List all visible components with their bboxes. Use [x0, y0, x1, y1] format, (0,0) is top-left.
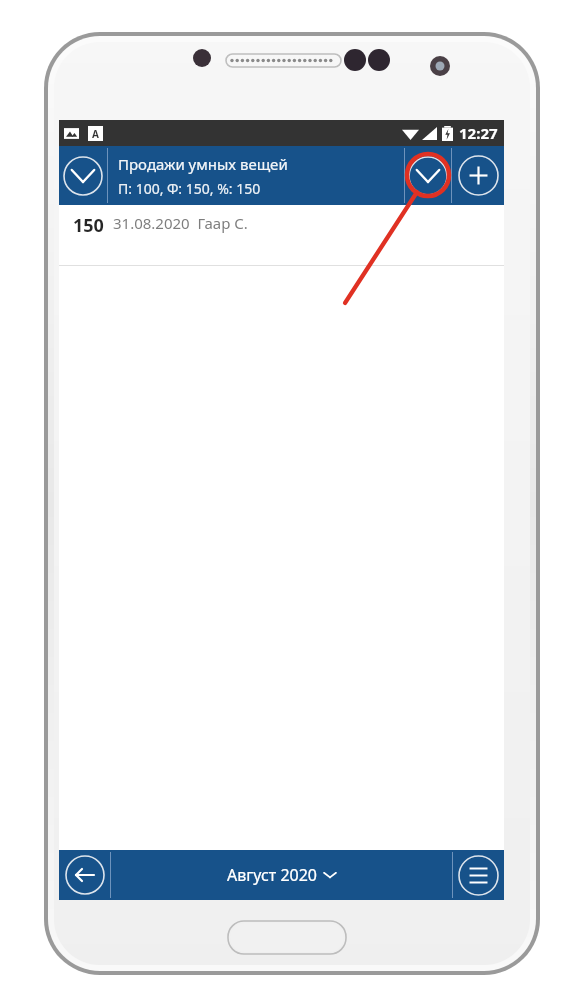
button[interactable]: Menu [453, 850, 504, 900]
staticText: A [92, 127, 99, 141]
staticText: Август 2020 [227, 864, 318, 886]
button[interactable]: Back [59, 850, 110, 900]
button[interactable]: Expand period [405, 146, 451, 205]
button[interactable]: 150 [59, 205, 504, 265]
button[interactable]: Collapse [59, 146, 107, 205]
staticText: П: 100, Ф: 150, %: 150 [118, 179, 261, 198]
button[interactable]: Август 2020 [111, 850, 452, 900]
staticText: 150 [73, 213, 104, 238]
staticText: Продажи умных вещей [118, 154, 288, 174]
button[interactable]: Продажи умных вещей [108, 146, 404, 205]
button[interactable]: Add [452, 146, 504, 205]
staticText: 12:27 [459, 123, 498, 143]
staticText: 31.08.2020 Гаар С. [113, 213, 248, 233]
